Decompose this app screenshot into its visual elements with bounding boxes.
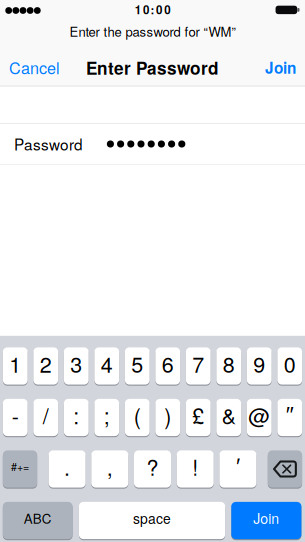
button[interactable]: ″ — [277, 399, 302, 436]
button[interactable]: 2 — [33, 347, 58, 385]
button[interactable]: Delete — [268, 450, 302, 488]
button[interactable]: 6 — [155, 347, 180, 385]
button[interactable]: Password — [0, 124, 305, 164]
staticText: 1 — [9, 348, 21, 379]
staticText: & — [222, 400, 236, 430]
staticText: Join — [265, 56, 296, 78]
button[interactable]: Join — [231, 502, 301, 539]
button[interactable]: 7 — [186, 347, 211, 385]
button[interactable]: - — [3, 399, 28, 436]
button[interactable]: / — [33, 399, 58, 436]
button[interactable]: , — [91, 450, 128, 488]
button[interactable]: 5 — [125, 347, 150, 385]
staticText: ? — [146, 451, 158, 482]
button[interactable]: #+= — [3, 450, 37, 488]
staticText: 5 — [131, 348, 143, 379]
staticText: 0 — [156, 1, 162, 18]
button[interactable]: 0 — [277, 347, 302, 385]
staticText: ″ — [286, 401, 294, 427]
staticText: ′ — [236, 453, 240, 478]
staticText: 8 — [223, 348, 235, 379]
staticText: , — [107, 451, 113, 482]
staticText: ! — [192, 451, 198, 482]
button[interactable]: ; — [94, 399, 119, 436]
button[interactable]: ( — [125, 399, 150, 436]
staticText: 9 — [253, 348, 265, 379]
button[interactable]: Join — [265, 56, 296, 78]
staticText: 4 — [101, 348, 113, 379]
button[interactable]: . — [49, 450, 86, 488]
button[interactable]: & — [216, 399, 241, 436]
button[interactable]: @ — [247, 399, 272, 436]
staticText: 6 — [162, 348, 174, 379]
button[interactable]: 1 — [3, 347, 28, 385]
staticText: £ — [192, 400, 204, 430]
button[interactable]: Cancel — [9, 56, 60, 79]
button[interactable]: £ — [186, 399, 211, 436]
button[interactable]: 3 — [64, 347, 89, 385]
button[interactable]: 4 — [94, 347, 119, 385]
staticText: - — [12, 400, 19, 430]
button[interactable]: ! — [177, 450, 214, 488]
button[interactable]: 9 — [247, 347, 272, 385]
staticText: Join — [253, 508, 279, 528]
staticText: Cancel — [9, 56, 60, 79]
staticText: ; — [104, 400, 110, 430]
staticText: @ — [248, 400, 270, 430]
staticText: : — [73, 400, 79, 430]
staticText: 0 — [284, 348, 296, 379]
staticText: #+= — [11, 459, 29, 474]
staticText: : — [150, 1, 154, 18]
button[interactable]: ABC — [3, 502, 73, 539]
staticText: Enter Password — [86, 55, 219, 80]
button[interactable]: 8 — [216, 347, 241, 385]
button[interactable]: ) — [155, 399, 180, 436]
staticText: Enter the password for “WM” — [69, 22, 235, 40]
button[interactable]: : — [64, 399, 89, 436]
staticText: space — [133, 508, 171, 528]
staticText: 7 — [192, 348, 204, 379]
staticText: 0 — [164, 1, 170, 18]
staticText: 2 — [40, 348, 52, 379]
staticText: 0 — [143, 1, 149, 18]
staticText: ) — [164, 400, 171, 430]
staticText: 3 — [70, 348, 82, 379]
button[interactable]: ? — [134, 450, 171, 488]
staticText: . — [64, 451, 70, 482]
staticText: / — [43, 400, 49, 430]
button[interactable]: space — [79, 502, 225, 539]
staticText: 1 — [135, 1, 141, 18]
staticText: Password — [14, 133, 83, 155]
staticText: ( — [134, 400, 141, 430]
staticText: ABC — [24, 508, 52, 528]
button[interactable]: ′ — [219, 450, 256, 488]
